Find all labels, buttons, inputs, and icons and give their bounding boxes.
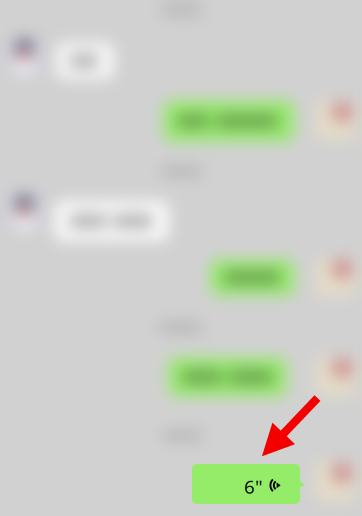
button[interactable]: Voice message, 6 seconds	[192, 464, 305, 504]
staticText: 6"	[244, 474, 263, 499]
